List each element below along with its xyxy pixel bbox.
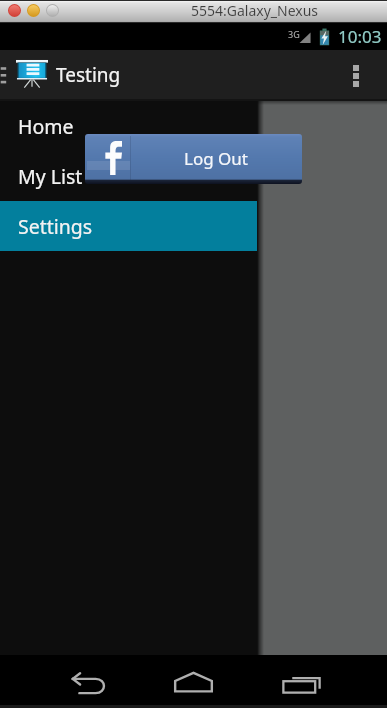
button[interactable]: Settings — [0, 201, 257, 251]
button[interactable]: Recent apps — [247, 655, 355, 708]
staticText: My List — [18, 163, 83, 190]
button[interactable]: Home — [140, 655, 247, 708]
staticText: Settings — [18, 213, 93, 240]
button[interactable]: Home — [0, 101, 257, 151]
staticText: 3G — [288, 28, 300, 40]
staticText: Testing — [56, 62, 121, 88]
button[interactable]: More options — [331, 50, 387, 101]
button[interactable]: Back — [33, 655, 141, 708]
staticText: 5554:Galaxy_Nexus — [191, 1, 319, 20]
button[interactable]: My List — [0, 151, 257, 201]
button[interactable]: Log Out — [85, 134, 302, 184]
staticText: Home — [18, 113, 74, 140]
staticText: Log Out — [184, 147, 248, 170]
staticText: 10:03 — [338, 25, 382, 48]
